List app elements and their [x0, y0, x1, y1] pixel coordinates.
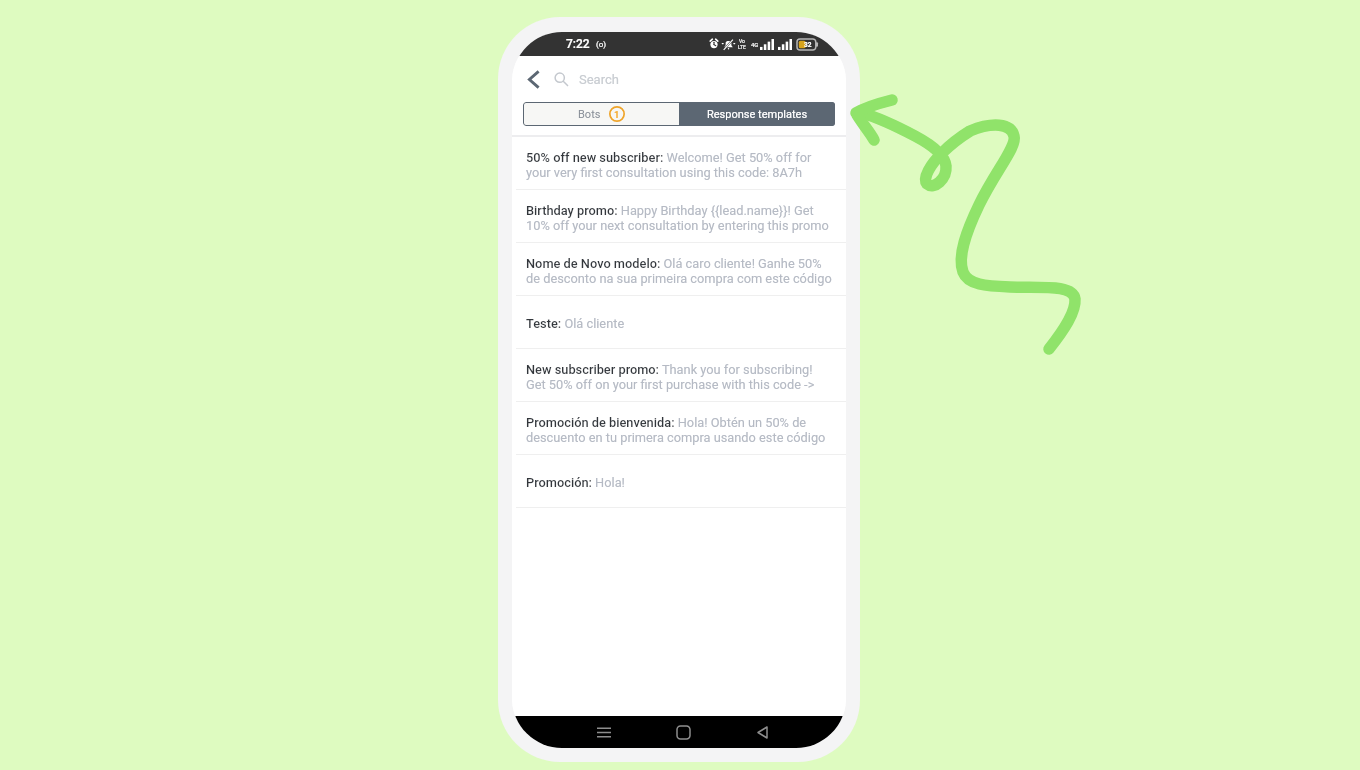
- button[interactable]: Home: [663, 716, 703, 748]
- button[interactable]: Promoción de bienvenida: Hola! Obtén un …: [512, 402, 846, 455]
- button[interactable]: Response templates: [679, 102, 835, 126]
- staticText: 50% off new subscriber: Welcome! Get 50%…: [526, 150, 835, 180]
- staticText: New subscriber promo: Thank you for subs…: [526, 362, 835, 392]
- staticText: Response templates: [707, 108, 808, 121]
- staticText: (o): [596, 40, 607, 49]
- button[interactable]: Birthday promo: Happy Birthday {{lead.na…: [512, 190, 846, 243]
- button[interactable]: New subscriber promo: Thank you for subs…: [512, 349, 846, 402]
- button[interactable]: Search: [547, 56, 846, 102]
- button[interactable]: Back: [742, 716, 782, 748]
- staticText: 1: [614, 109, 620, 120]
- staticText: 32: [804, 41, 812, 49]
- staticText: Teste: Olá cliente: [526, 316, 625, 331]
- staticText: Promoción de bienvenida: Hola! Obtén un …: [526, 415, 835, 445]
- staticText: Bots: [578, 108, 601, 121]
- button[interactable]: Back: [521, 62, 547, 96]
- staticText: Search: [579, 72, 619, 87]
- staticText: 7:22: [566, 37, 590, 51]
- button[interactable]: Recents: [584, 716, 624, 748]
- staticText: 4G: [751, 41, 759, 48]
- staticText: Vo: [739, 38, 745, 44]
- staticText: Nome de Novo modelo: Olá caro cliente! G…: [526, 256, 835, 286]
- staticText: Promoción: Hola!: [526, 475, 625, 490]
- staticText: Birthday promo: Happy Birthday {{lead.na…: [526, 203, 835, 233]
- button[interactable]: Bots: [523, 102, 679, 126]
- button[interactable]: Promoción: Hola!: [512, 455, 846, 508]
- button[interactable]: Nome de Novo modelo: Olá caro cliente! G…: [512, 243, 846, 296]
- staticText: LTE: [738, 44, 746, 50]
- button[interactable]: Teste: Olá cliente: [512, 296, 846, 349]
- button[interactable]: 50% off new subscriber: Welcome! Get 50%…: [512, 137, 846, 190]
